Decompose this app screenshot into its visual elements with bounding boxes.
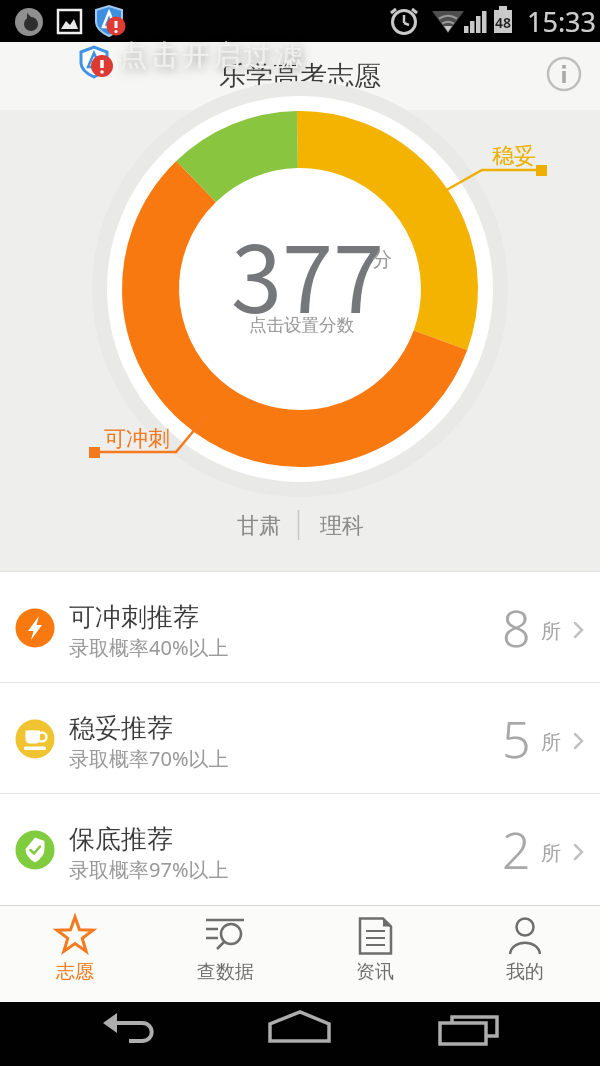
- staticText: 可冲刺: [104, 425, 170, 453]
- staticText: 15:33: [527, 3, 597, 40]
- button[interactable]: 志愿: [0, 906, 150, 1002]
- staticText: 资讯: [356, 960, 394, 984]
- button[interactable]: 资讯: [300, 906, 450, 1002]
- staticText: 8: [502, 594, 531, 662]
- staticText: 保底推荐: [69, 823, 173, 856]
- staticText: 可冲刺推荐: [69, 601, 199, 634]
- staticText: 48: [495, 13, 512, 32]
- button[interactable]: 377: [0, 110, 600, 572]
- staticText: 点击设置分数: [249, 314, 354, 336]
- staticText: 点击开启过滤: [118, 38, 304, 73]
- staticText: 查数据: [197, 960, 254, 984]
- staticText: 所: [541, 619, 561, 644]
- staticText: 2: [502, 816, 531, 884]
- button[interactable]: 保底推荐: [0, 794, 600, 905]
- button[interactable]: 可冲刺推荐: [0, 572, 600, 683]
- button[interactable]: 甘肃: [237, 512, 281, 540]
- button[interactable]: 稳妥推荐: [0, 683, 600, 794]
- staticText: 录取概率97%以上: [69, 856, 229, 883]
- staticText: 377: [231, 206, 385, 339]
- staticText: 志愿: [56, 960, 94, 984]
- staticText: 所: [541, 730, 561, 755]
- staticText: 我的: [506, 960, 544, 984]
- staticText: 稳妥: [492, 142, 536, 170]
- staticText: 所: [541, 841, 561, 866]
- staticText: 稳妥推荐: [69, 712, 173, 745]
- button[interactable]: 查数据: [150, 906, 300, 1002]
- button[interactable]: [545, 55, 583, 93]
- staticText: 录取概率40%以上: [69, 634, 229, 661]
- button[interactable]: 我的: [450, 906, 600, 1002]
- button[interactable]: 理科: [320, 512, 364, 540]
- staticText: 乐学高考志愿: [219, 59, 381, 93]
- staticText: 5: [502, 705, 531, 773]
- staticText: 录取概率70%以上: [69, 745, 229, 772]
- staticText: 分: [372, 247, 392, 272]
- button[interactable]: 点击开启过滤: [78, 45, 304, 81]
